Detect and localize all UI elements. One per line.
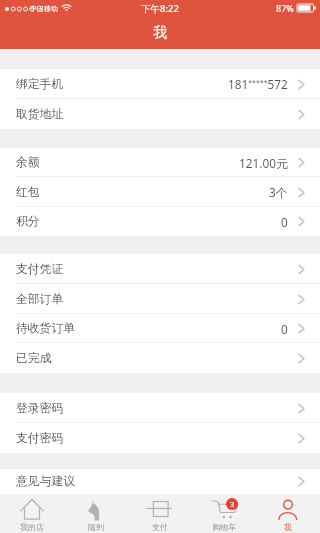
button[interactable]: 已完成 bbox=[0, 343, 320, 373]
button[interactable]: 我的店 bbox=[0, 494, 64, 533]
staticText: 3个 bbox=[269, 184, 288, 200]
button[interactable]: 绑定手机 bbox=[0, 69, 320, 99]
button[interactable]: 支付凭证 bbox=[0, 254, 320, 284]
staticText: 支付凭证 bbox=[16, 262, 64, 277]
staticText: 绑定手机 bbox=[16, 77, 64, 92]
button[interactable]: 余额 bbox=[0, 148, 320, 177]
staticText: 我的店 bbox=[20, 522, 44, 532]
staticText: 87% bbox=[276, 2, 294, 14]
button[interactable]: 红包 bbox=[0, 177, 320, 207]
staticText: 待收货订单 bbox=[16, 321, 75, 336]
staticText: 意见与建议 bbox=[16, 474, 75, 489]
staticText: 随到 bbox=[88, 522, 104, 532]
staticText: 支付 bbox=[152, 522, 168, 532]
button[interactable]: 3 bbox=[192, 494, 256, 533]
button[interactable]: 积分 bbox=[0, 207, 320, 236]
staticText: 余额 bbox=[16, 155, 40, 170]
button[interactable]: 意见与建议 bbox=[0, 469, 320, 494]
staticText: 已完成 bbox=[16, 351, 52, 366]
staticText: 我 bbox=[153, 24, 167, 42]
staticText: 支付密码 bbox=[16, 431, 64, 446]
staticText: 登录密码 bbox=[16, 401, 64, 416]
button[interactable]: 支付密码 bbox=[0, 423, 320, 453]
staticText: 全部订单 bbox=[16, 292, 64, 307]
staticText: 下午8:22 bbox=[141, 2, 179, 15]
staticText: 取货地址 bbox=[16, 107, 64, 122]
staticText: 购物车 bbox=[212, 522, 236, 532]
staticText: 我 bbox=[284, 522, 292, 532]
button[interactable]: 支付 bbox=[128, 494, 192, 533]
button[interactable]: 全部订单 bbox=[0, 284, 320, 314]
staticText: 红包 bbox=[16, 185, 40, 200]
button[interactable]: 我 bbox=[256, 494, 320, 533]
button[interactable]: 随到 bbox=[64, 494, 128, 533]
staticText: 3 bbox=[230, 499, 235, 509]
staticText: 积分 bbox=[16, 214, 40, 229]
staticText: 121.00元 bbox=[239, 155, 288, 171]
staticText: 0 bbox=[281, 214, 288, 230]
button[interactable]: 登录密码 bbox=[0, 393, 320, 423]
staticText: 中国移动 bbox=[30, 4, 58, 13]
staticText: 0 bbox=[281, 321, 288, 337]
staticText: 181*****572 bbox=[228, 76, 288, 92]
button[interactable]: 待收货订单 bbox=[0, 314, 320, 343]
button[interactable]: 取货地址 bbox=[0, 99, 320, 129]
